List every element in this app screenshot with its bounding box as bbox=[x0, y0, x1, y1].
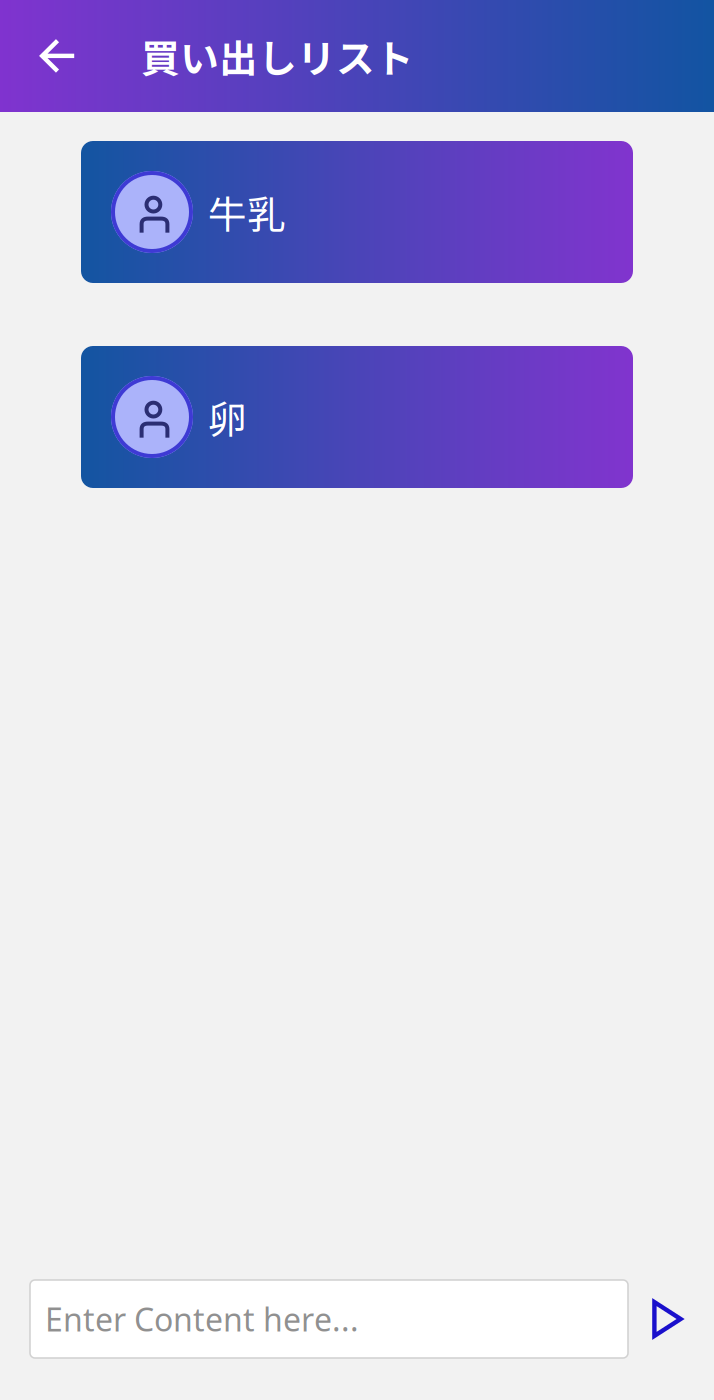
staticText: 買い出しリスト bbox=[141, 28, 414, 84]
button[interactable]: 牛乳 bbox=[81, 141, 633, 283]
button[interactable]: 卵 bbox=[81, 346, 633, 488]
staticText: 卵 bbox=[208, 389, 247, 445]
staticText: Enter Content here... bbox=[45, 1298, 359, 1340]
button[interactable]: Send bbox=[628, 1280, 714, 1358]
button[interactable]: Back bbox=[0, 0, 141, 112]
staticText: 牛乳 bbox=[208, 184, 286, 240]
